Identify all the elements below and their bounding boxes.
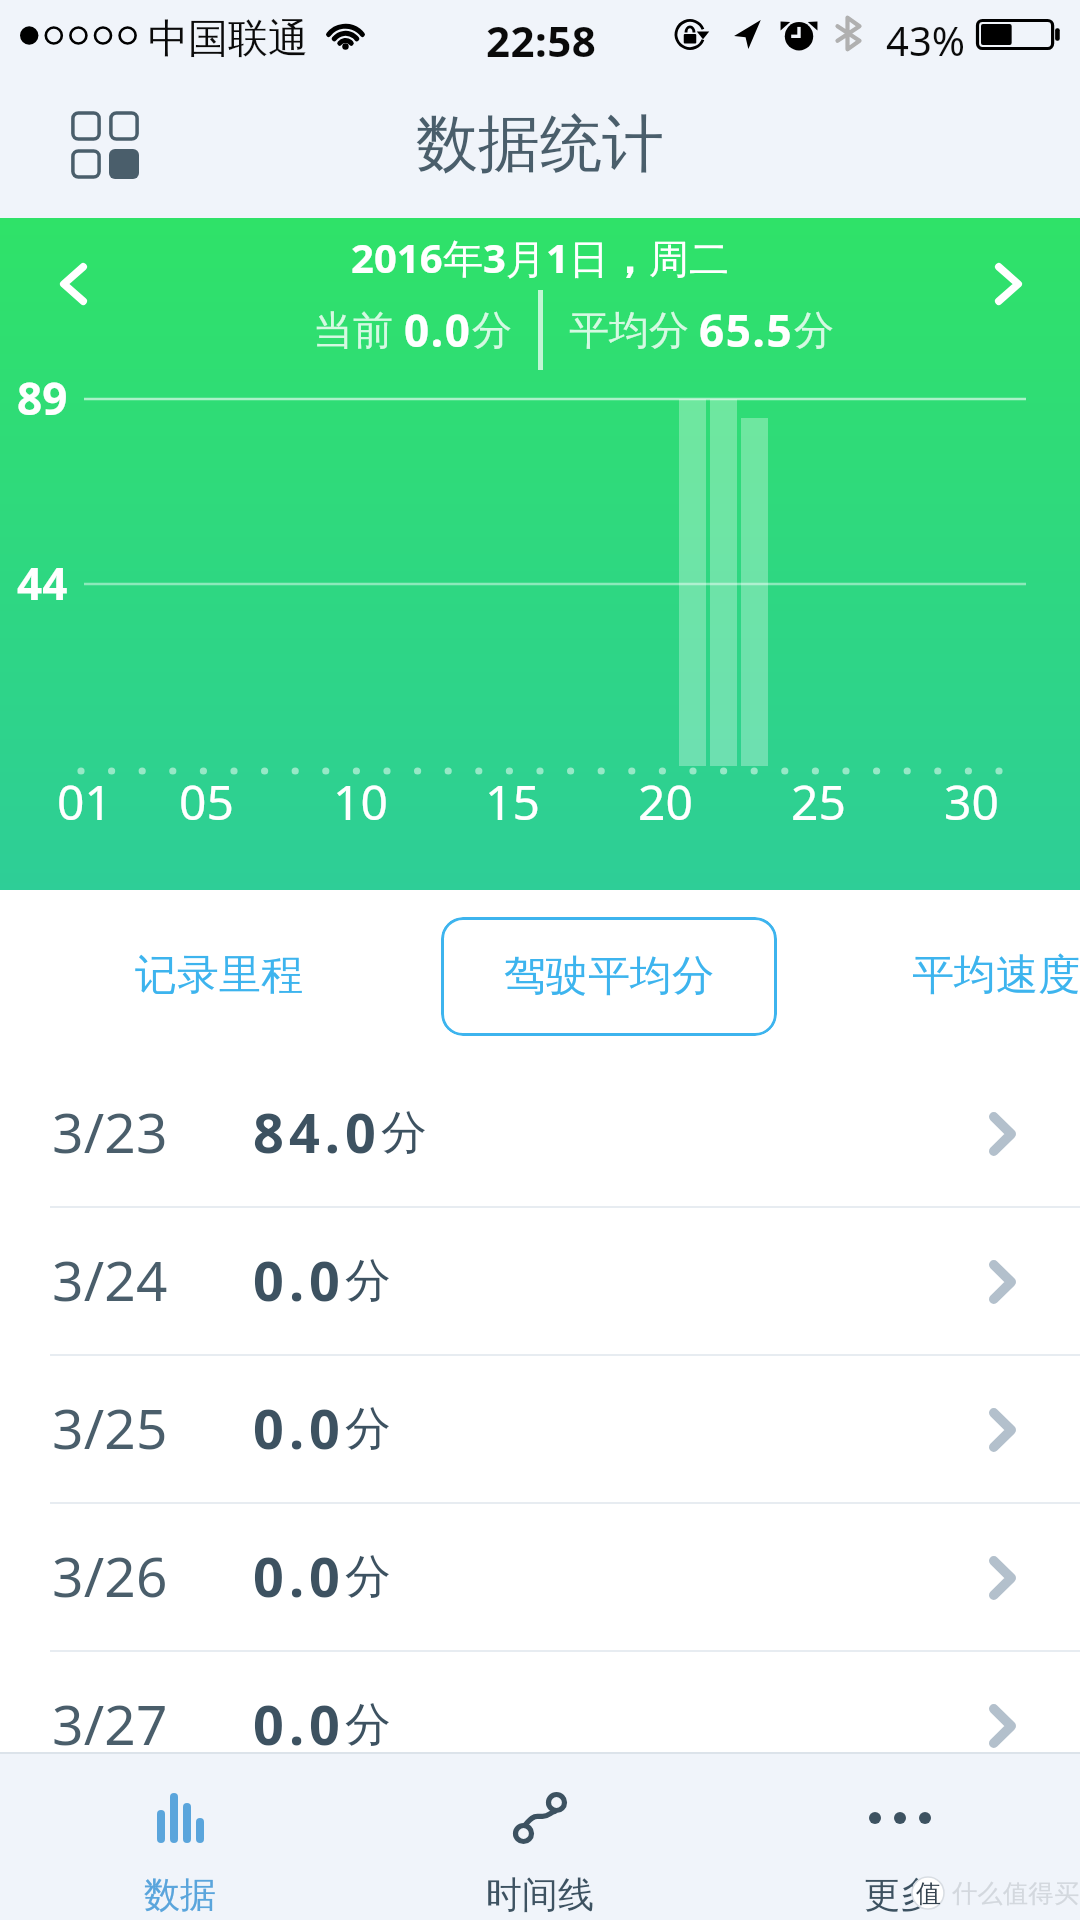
button[interactable]: 3/23 [0,1060,1080,1208]
staticText: 周二 [649,234,729,284]
button[interactable]: Dashboard grid [51,91,159,199]
staticText: 更多 [864,1872,936,1917]
button[interactable]: Next day [968,244,1048,324]
staticText: 值 [916,1878,941,1909]
button[interactable]: 3/27 [0,1652,1080,1800]
button[interactable]: 3/24 [0,1208,1080,1356]
staticText: 30 [944,769,999,834]
staticText: 分 [472,305,512,355]
staticText: 数据统计 [416,105,664,183]
staticText: 分 [381,1104,427,1162]
staticText: 2016 [351,230,443,284]
staticText: 分 [345,1696,391,1754]
staticText: 分 [794,305,834,355]
staticText: ， [609,234,649,284]
staticText: 分 [345,1400,391,1458]
staticText: 01 [57,769,112,834]
staticText: 分 [345,1548,391,1606]
staticText: 0.0 [253,1243,345,1317]
staticText: 平均分 [569,305,689,355]
staticText: 25 [791,769,846,834]
staticText: 3/23 [52,1094,168,1169]
staticText: 3/27 [52,1686,168,1761]
staticText: 0.0 [253,1391,345,1465]
staticText: 20 [638,769,693,834]
staticText: 中国联通 [148,13,308,63]
staticText: 15 [485,769,540,834]
staticText: 分 [345,1252,391,1310]
button[interactable]: 时间线 [360,1754,720,1920]
button[interactable]: 驾驶平均分 [441,917,777,1036]
staticText: 3/25 [52,1390,168,1465]
staticText: 记录里程 [135,949,303,1002]
button[interactable]: 平均速度 [896,916,1080,1034]
button[interactable]: 3/26 [0,1504,1080,1652]
staticText: 44 [17,553,68,613]
staticText: 65.5 [699,300,794,360]
staticText: 3 [483,230,506,284]
button[interactable]: 3/25 [0,1356,1080,1504]
staticText: 驾驶平均分 [504,950,714,1003]
staticText: 1 [546,230,569,284]
staticText: 22:58 [486,12,597,69]
button[interactable]: 更多 [720,1754,1080,1920]
staticText: 89 [17,368,68,428]
staticText: 84.0 [253,1095,381,1169]
staticText: 3/26 [52,1538,168,1613]
button[interactable]: 数据 [0,1754,360,1920]
staticText: 0.0 [253,1687,345,1761]
staticText: 05 [179,769,234,834]
staticText: 年 [443,234,483,284]
staticText: 日 [569,234,609,284]
staticText: 当前 [313,305,393,355]
staticText: 时间线 [486,1872,594,1917]
staticText: 月 [506,234,546,284]
staticText: 0.0 [253,1539,345,1613]
staticText: 什么值得买 [952,1878,1080,1909]
staticText: 平均速度 [912,949,1080,1002]
staticText: 10 [333,769,388,834]
staticText: 数据 [144,1872,216,1917]
staticText: 3/24 [52,1242,168,1317]
staticText: 0.0 [404,300,472,360]
staticText: 43% [886,13,965,67]
button[interactable]: Previous day [33,244,113,324]
button[interactable]: 记录里程 [119,916,319,1034]
